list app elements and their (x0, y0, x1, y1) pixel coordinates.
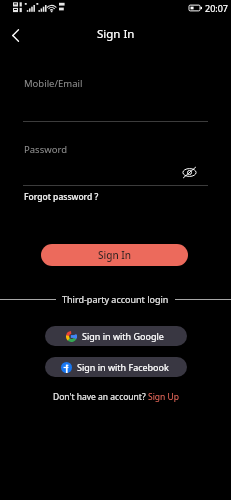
staticText: Sign in with Google (82, 330, 164, 342)
staticText: Third-party account login (62, 293, 169, 305)
button[interactable]: Sign in with Google (45, 326, 187, 346)
button[interactable]: Back (3, 23, 27, 47)
button[interactable]: Sign In (41, 244, 188, 266)
button[interactable]: Sign Up (148, 391, 179, 403)
staticText: 20:07 (205, 2, 229, 14)
staticText: Sign In (97, 26, 135, 42)
button[interactable]: Sign in with Facebook (45, 357, 187, 377)
button[interactable]: Show password (179, 162, 199, 182)
button[interactable]: Forgot password ? (24, 191, 99, 203)
staticText: Don't have an account? (53, 391, 148, 403)
staticText: Password (24, 143, 67, 156)
staticText: Mobile/Email (24, 77, 83, 90)
staticText: Sign in with Facebook (77, 361, 169, 373)
staticText: Sign In (98, 248, 132, 262)
